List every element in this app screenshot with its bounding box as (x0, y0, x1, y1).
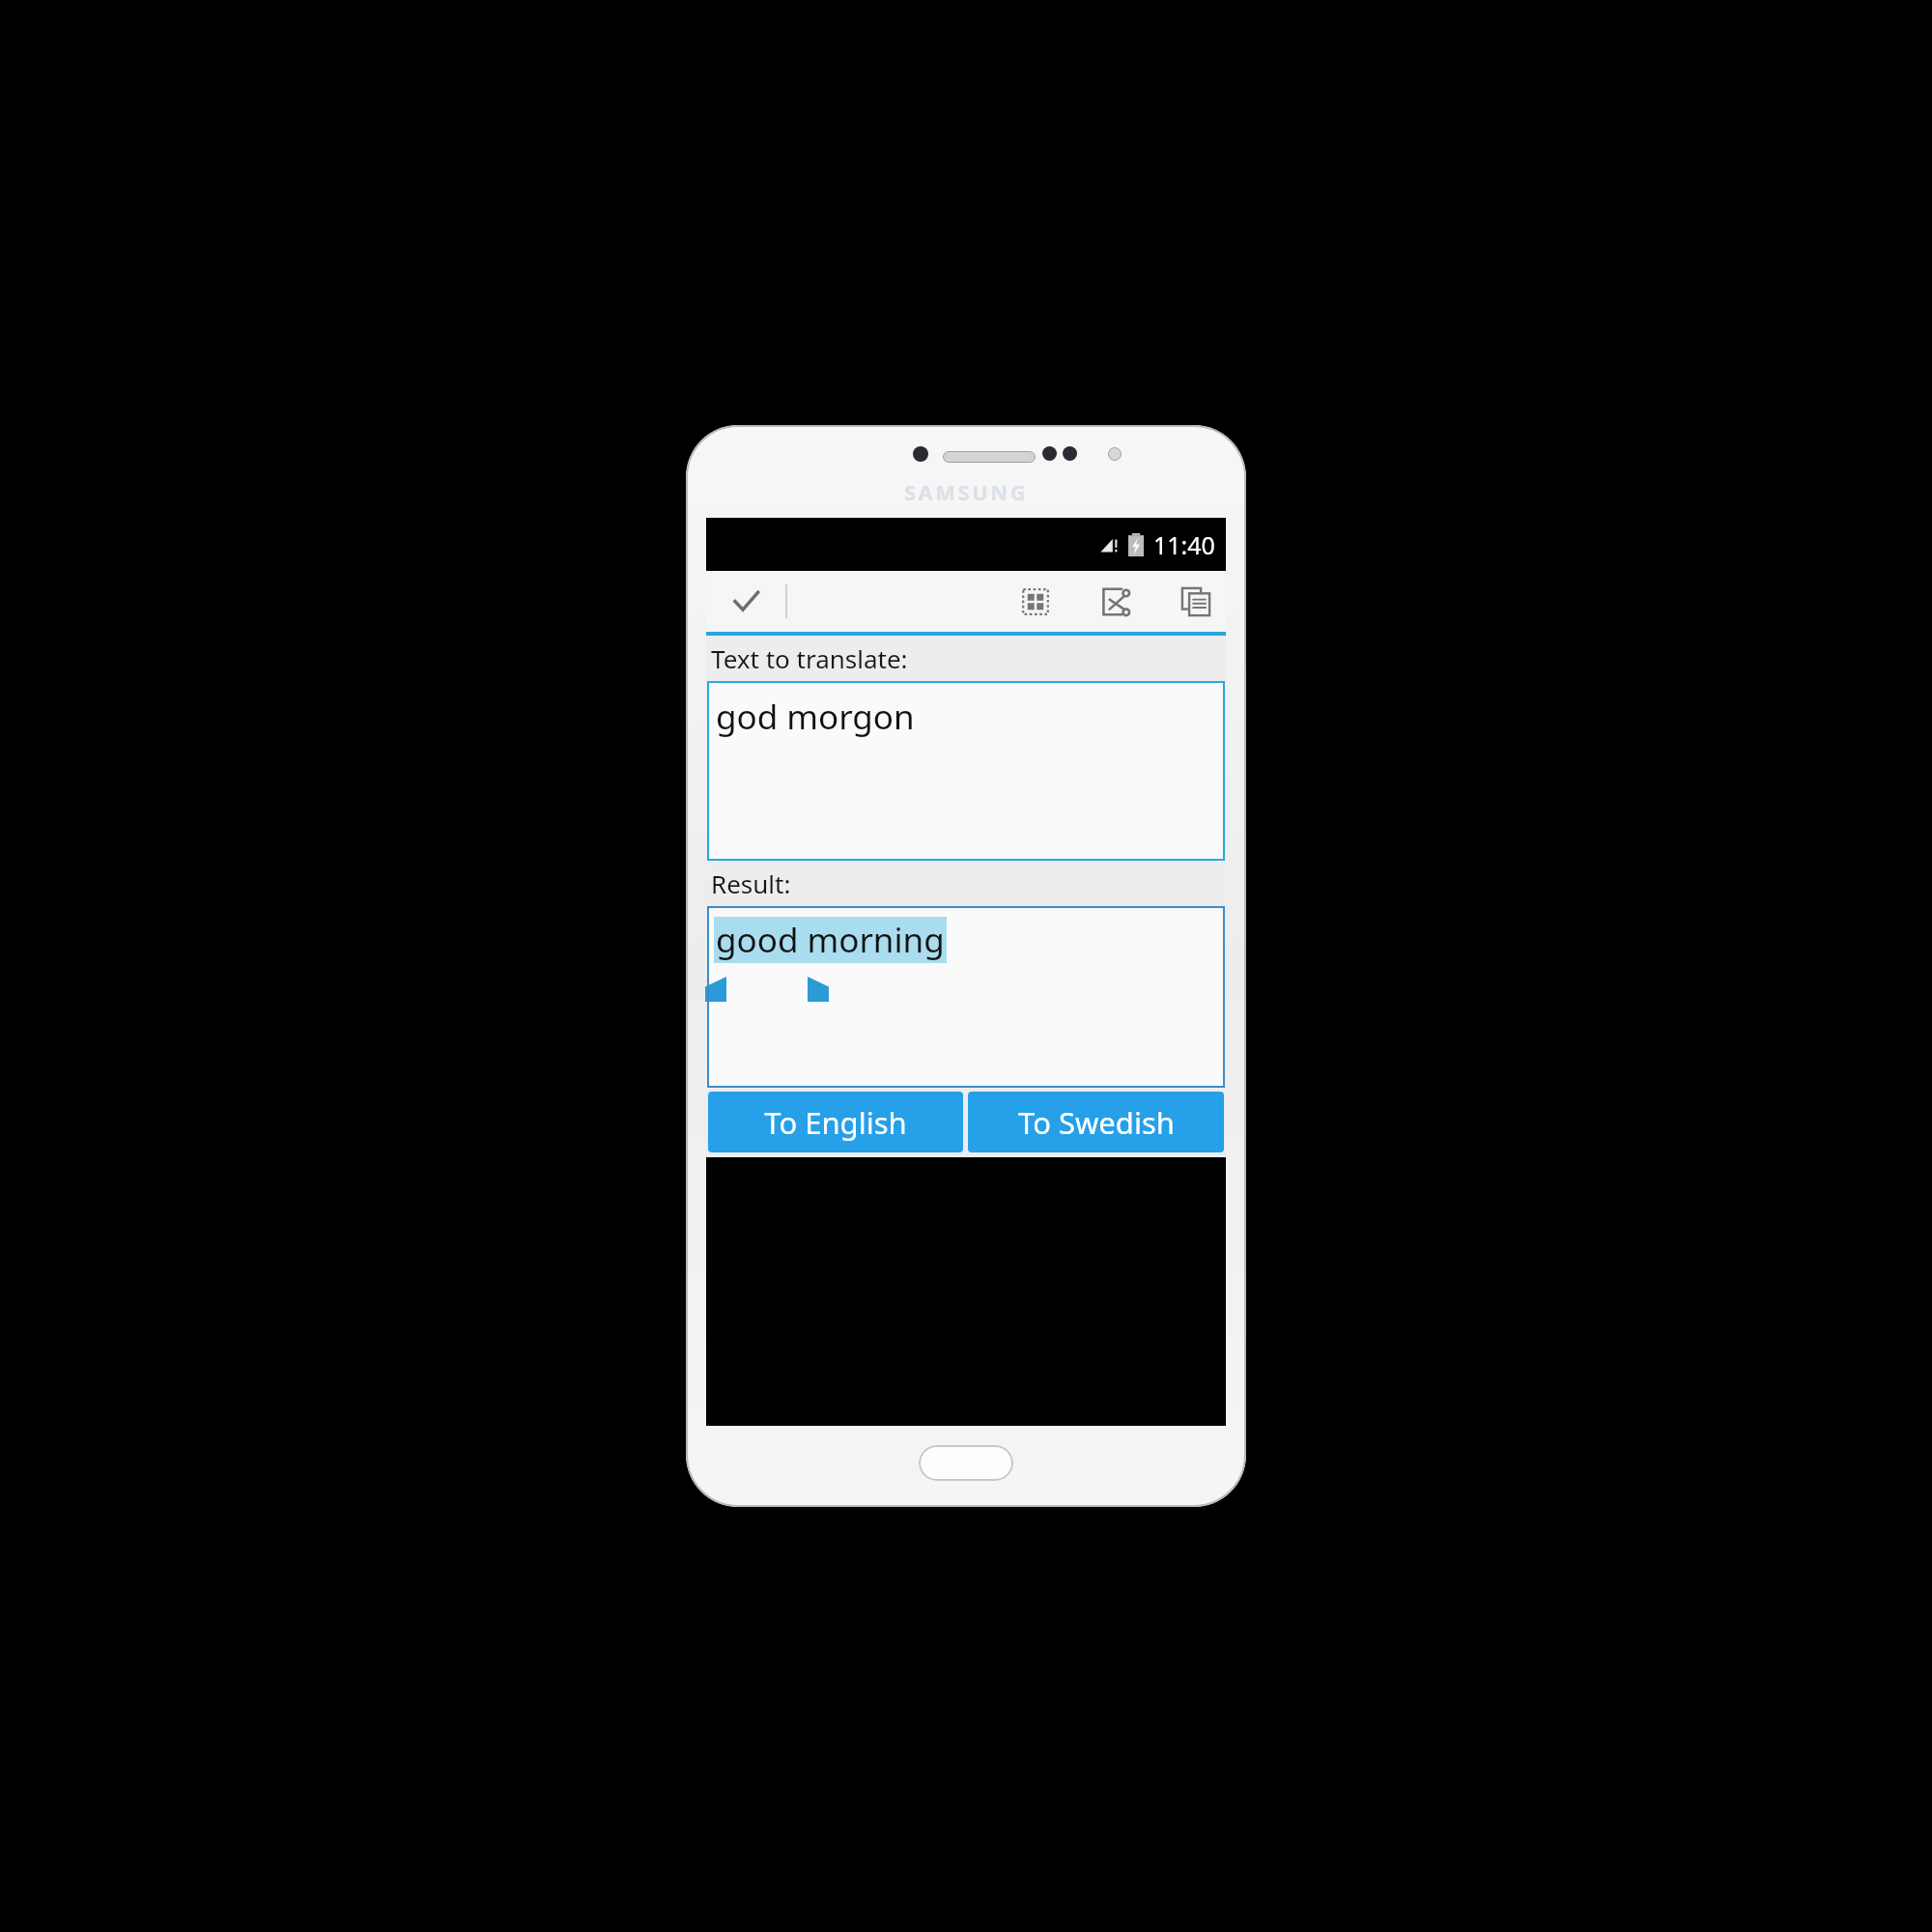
button[interactable]: Done (718, 571, 774, 632)
button[interactable]: To Swedish (968, 1092, 1224, 1152)
staticText: To Swedish (1018, 1102, 1175, 1143)
button[interactable]: Select all (1011, 571, 1060, 632)
button[interactable]: good morning (707, 906, 1225, 1088)
button[interactable]: god morgon (707, 681, 1225, 861)
button[interactable]: Cut (1092, 571, 1140, 632)
staticText: 11:40 (1153, 528, 1215, 561)
button[interactable]: To English (708, 1092, 963, 1152)
staticText: To English (764, 1102, 907, 1143)
staticText: Text to translate: (711, 641, 908, 675)
button[interactable]: Copy (1172, 571, 1220, 632)
staticText: Result: (711, 867, 791, 900)
staticText: SAMSUNG (904, 477, 1029, 506)
staticText: god morgon (716, 694, 915, 740)
staticText: good morning (716, 917, 945, 963)
